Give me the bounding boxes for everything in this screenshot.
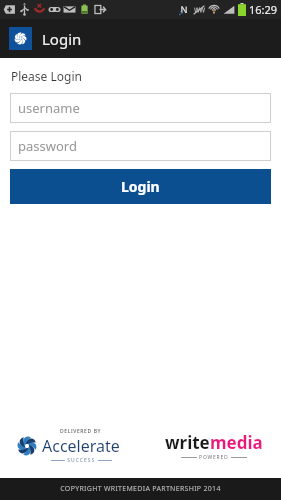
staticText: username [18, 99, 80, 117]
staticText: 16:29 [249, 2, 278, 17]
button[interactable]: username [10, 93, 271, 123]
button[interactable]: write [165, 431, 263, 461]
staticText: Please Login [11, 68, 82, 84]
staticText: SUCCESS [65, 457, 98, 464]
staticText: media [210, 431, 263, 454]
staticText: DELIVERED BY [60, 428, 102, 435]
staticText: password [18, 137, 77, 155]
staticText: Login [121, 177, 160, 196]
staticText: write [165, 431, 210, 454]
button[interactable]: password [10, 131, 271, 161]
staticText: POWERED [197, 454, 231, 461]
other: App logo [9, 27, 32, 50]
button[interactable]: DELIVERED BY [14, 428, 120, 464]
staticText: COPYRIGHT WRITEMEDIA PARTNERSHIP 2014 [60, 484, 221, 494]
button[interactable]: Login [10, 169, 271, 204]
staticText: Login [42, 29, 82, 49]
staticText: Accelerate [42, 435, 120, 457]
